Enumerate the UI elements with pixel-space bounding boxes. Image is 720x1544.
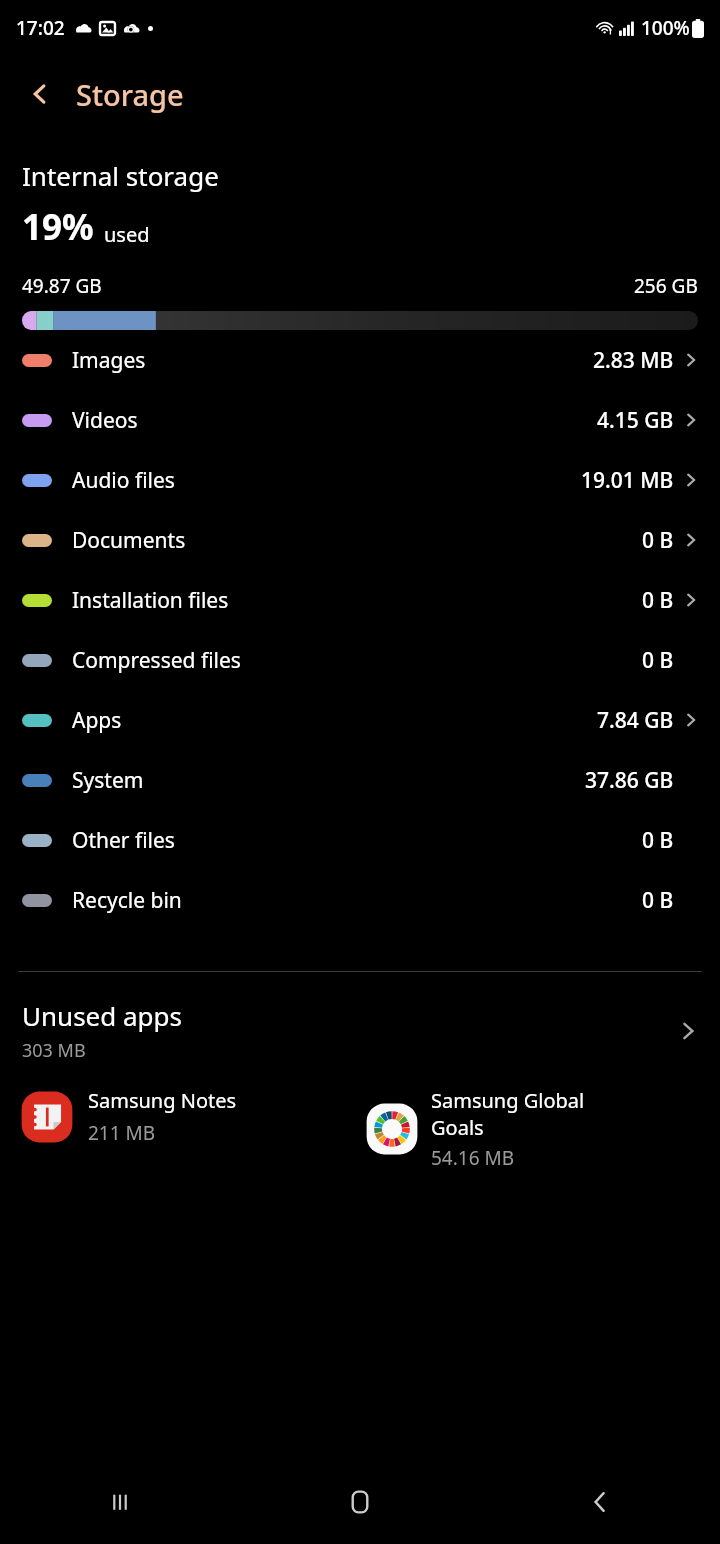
staticText: Documents	[72, 526, 186, 555]
staticText: 256 GB	[634, 273, 698, 299]
button[interactable]: Home	[240, 1460, 480, 1544]
staticText: Videos	[72, 406, 138, 435]
button[interactable]: Apps	[0, 705, 720, 735]
button[interactable]: Documents	[0, 525, 720, 555]
staticText: used	[104, 221, 150, 248]
staticText: 7.84 GB	[597, 706, 674, 735]
staticText: 2.83 MB	[593, 346, 674, 375]
staticText: Recycle bin	[72, 886, 182, 915]
staticText: Internal storage	[22, 158, 219, 193]
staticText: Audio files	[72, 466, 175, 495]
button[interactable]: Samsung Notes	[20, 1087, 355, 1146]
staticText: 19%	[22, 203, 94, 251]
staticText: 100%	[641, 15, 690, 41]
staticText: 49.87 GB	[22, 273, 102, 299]
staticText: Images	[72, 346, 146, 375]
staticText: 37.86 GB	[585, 766, 674, 795]
staticText: Unused apps	[22, 998, 183, 1033]
staticText: Apps	[72, 706, 122, 735]
staticText: 0 B	[642, 886, 674, 915]
button[interactable]: Unused apps	[0, 994, 720, 1067]
button[interactable]: Other files	[0, 825, 720, 855]
staticText: 19.01 MB	[581, 466, 674, 495]
staticText: Storage	[76, 75, 184, 114]
staticText: 0 B	[642, 526, 674, 555]
staticText: System	[72, 766, 144, 795]
staticText: Installation files	[72, 586, 229, 615]
staticText: Compressed files	[72, 646, 241, 675]
button[interactable]: Recycle bin	[0, 885, 720, 915]
staticText: 54.16 MB	[431, 1145, 515, 1171]
button[interactable]: Installation files	[0, 585, 720, 615]
staticText: Samsung Notes	[88, 1087, 237, 1114]
staticText: 0 B	[642, 646, 674, 675]
button[interactable]: Recents	[0, 1460, 240, 1544]
staticText: 0 B	[642, 586, 674, 615]
button[interactable]: Images	[0, 345, 720, 375]
staticText: 0 B	[642, 826, 674, 855]
staticText: 4.15 GB	[597, 406, 674, 435]
staticText: Goals	[431, 1114, 484, 1141]
staticText: 303 MB	[22, 1038, 86, 1063]
button[interactable]: Back	[16, 70, 64, 118]
button[interactable]: Samsung Global	[365, 1087, 700, 1171]
button[interactable]: System	[0, 765, 720, 795]
staticText: Samsung Global	[431, 1087, 585, 1114]
staticText: 17:02	[16, 15, 65, 41]
button[interactable]: Compressed files	[0, 645, 720, 675]
staticText: Other files	[72, 826, 175, 855]
button[interactable]: Videos	[0, 405, 720, 435]
button[interactable]: Audio files	[0, 465, 720, 495]
button[interactable]: Back	[480, 1460, 720, 1544]
staticText: 211 MB	[88, 1120, 156, 1146]
